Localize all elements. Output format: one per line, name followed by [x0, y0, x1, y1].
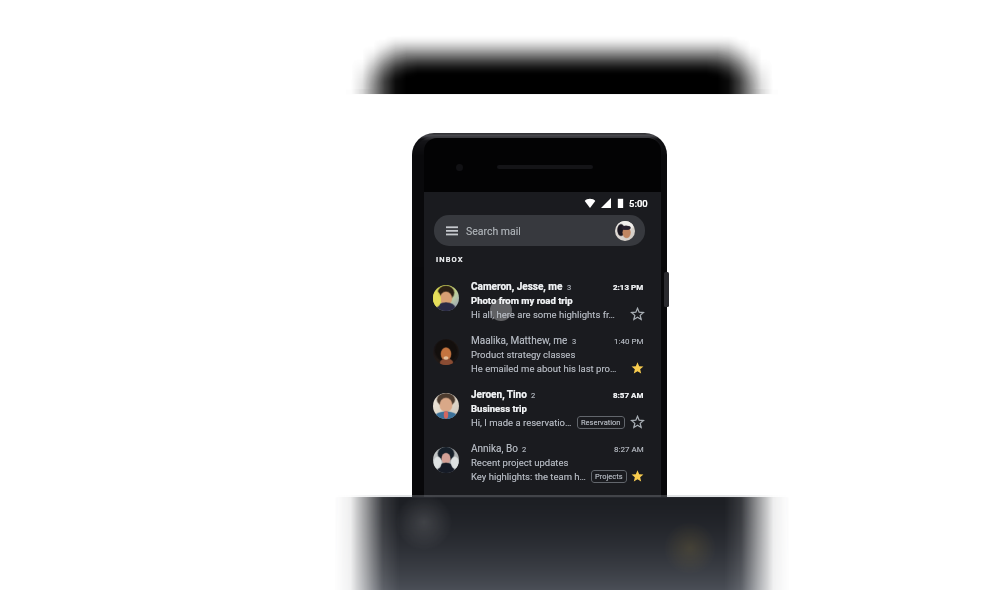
button[interactable]: Marco, Theo: [424, 497, 661, 551]
staticText: Product strategy classes: [471, 349, 576, 360]
staticText: Jeroen, Tino: [471, 389, 527, 401]
staticText: Key highlights: the team h…: [471, 471, 586, 482]
staticText: Annika, Bo: [471, 443, 518, 455]
other: Menu: [446, 226, 458, 235]
staticText: 2: [531, 391, 536, 400]
button[interactable]: Account: [615, 221, 635, 241]
staticText: INBOX: [436, 255, 464, 264]
button[interactable]: Unstar: [631, 470, 644, 483]
staticText: Hi all, here are some highlights fr…: [471, 309, 615, 320]
staticText: 2:13 PM: [613, 283, 644, 292]
staticText: 2: [522, 445, 527, 454]
staticText: 5:00: [629, 198, 648, 209]
staticText: Reservation: [581, 418, 621, 427]
button[interactable]: Unstar: [631, 362, 644, 375]
staticText: 8:57 AM: [613, 391, 644, 400]
button[interactable]: Menu: [434, 215, 645, 246]
button[interactable]: Jeroen, Tino: [424, 389, 661, 443]
staticText: 1:40 PM: [614, 337, 644, 346]
staticText: Hi, I made a reservatio…: [471, 417, 572, 428]
staticText: Photo from my road trip: [471, 295, 573, 306]
button[interactable]: Star: [631, 416, 644, 429]
staticText: Recent project updates: [471, 457, 569, 468]
staticText: Cameron, Jesse, me: [471, 281, 563, 293]
button[interactable]: Cameron, Jesse, me: [424, 281, 661, 335]
staticText: Search mail: [466, 225, 521, 237]
staticText: Business trip: [471, 403, 527, 414]
staticText: He emailed me about his last pro…: [471, 363, 617, 374]
staticText: 3: [572, 337, 577, 346]
staticText: 3: [567, 283, 572, 292]
button[interactable]: Annika, Bo: [424, 443, 661, 497]
staticText: Projects: [595, 472, 623, 481]
staticText: Maalika, Matthew, me: [471, 335, 568, 347]
button[interactable]: Star: [631, 308, 644, 321]
staticText: 8:27 AM: [614, 445, 644, 454]
button[interactable]: Maalika, Matthew, me: [424, 335, 661, 389]
